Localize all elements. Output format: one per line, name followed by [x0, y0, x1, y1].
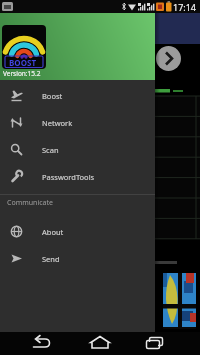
staticText: BOOST	[9, 57, 36, 68]
staticText: Network	[42, 118, 73, 128]
button[interactable]: Network	[0, 109, 155, 136]
button[interactable]	[90, 334, 110, 352]
staticText: 17:14	[173, 1, 197, 13]
button[interactable]	[145, 335, 165, 351]
button[interactable]	[30, 334, 54, 352]
button[interactable]: Boost	[0, 82, 155, 109]
button[interactable]: PasswordTools	[0, 163, 155, 190]
staticText: Scan	[42, 145, 59, 155]
button[interactable]: Send	[0, 245, 155, 272]
staticText: Version:15.2	[3, 69, 41, 78]
staticText: Send	[42, 254, 60, 264]
staticText: Communicate	[7, 198, 53, 208]
button[interactable]	[156, 46, 181, 71]
staticText: About	[42, 227, 64, 237]
button[interactable]: About	[0, 218, 155, 245]
staticText: PasswordTools	[42, 172, 95, 182]
staticText: Boost	[42, 91, 63, 101]
button[interactable]: Scan	[0, 136, 155, 163]
